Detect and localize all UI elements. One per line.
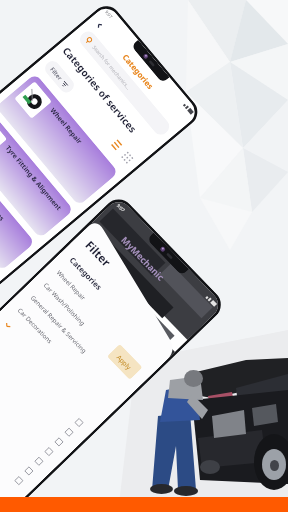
button[interactable] — [0, 379, 35, 497]
button[interactable]: Filter — [42, 58, 77, 95]
button[interactable]: Wheel Repair — [0, 73, 119, 206]
button[interactable]: Grid view — [119, 149, 136, 166]
staticText: Search for mechanics... — [91, 44, 132, 91]
button[interactable]: Car Decorations — [7, 297, 120, 413]
staticText: Categories — [120, 52, 156, 91]
staticText: 9:07 — [116, 202, 126, 213]
button[interactable] — [0, 369, 45, 487]
button[interactable]: Tyre Fitting & Alignment — [0, 111, 74, 239]
staticText: 9:07 — [104, 9, 114, 19]
staticText: Filter — [49, 65, 64, 82]
button[interactable] — [0, 340, 75, 458]
staticText: General Repair & Servicing — [29, 294, 88, 355]
button[interactable] — [0, 350, 65, 468]
button[interactable] — [0, 321, 95, 439]
staticText: Car Decorations — [0, 176, 7, 223]
staticText: Wheel Repair — [48, 106, 84, 146]
staticText: Categories of services — [60, 44, 139, 136]
staticText: Car Decorations — [16, 306, 54, 345]
button[interactable] — [0, 359, 55, 478]
staticText: Wheel Repair — [55, 268, 88, 302]
staticText: Filter — [82, 237, 114, 270]
staticText: Tyre Fitting & Alignment — [3, 143, 64, 212]
staticText: MyMechanic — [119, 234, 167, 283]
button[interactable] — [0, 330, 85, 448]
button[interactable]: General Repair & Servicing — [20, 284, 133, 400]
staticText: Categories — [67, 255, 105, 293]
button[interactable]: Apply — [107, 344, 143, 380]
button[interactable]: List view — [108, 136, 125, 153]
button[interactable]: Wheel Repair — [46, 259, 159, 375]
button[interactable]: Search for mechanics... — [77, 28, 173, 138]
staticText: Apply — [115, 352, 134, 372]
button[interactable]: Car Decorations — [0, 143, 35, 271]
button[interactable]: Back — [93, 19, 106, 32]
button[interactable]: Car Wash/Polishing — [33, 272, 146, 388]
staticText: Car Wash/Polishing — [42, 281, 87, 327]
